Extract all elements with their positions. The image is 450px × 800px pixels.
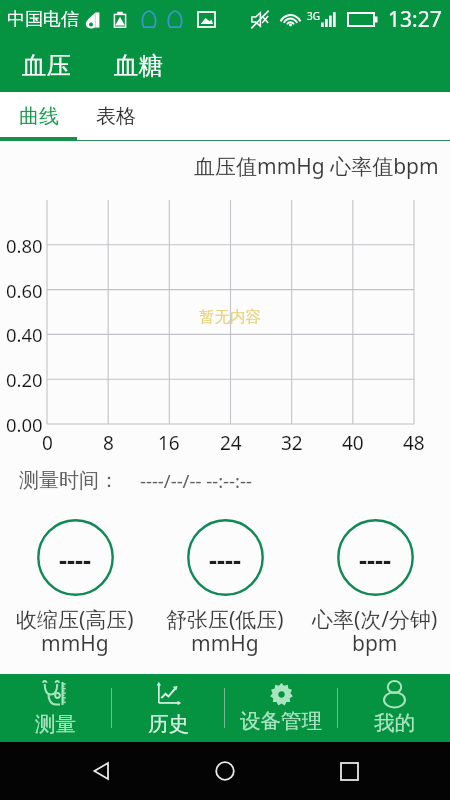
staticText: ----	[359, 542, 392, 576]
button[interactable]: Back	[80, 749, 124, 793]
staticText: 我的	[374, 710, 415, 736]
button[interactable]: Home	[203, 749, 247, 793]
staticText: 0	[42, 430, 53, 456]
button[interactable]: 我的	[338, 674, 450, 742]
staticText: 测量	[35, 711, 76, 737]
staticText: 心率(次/分钟)	[312, 605, 438, 634]
staticText: mmHg	[41, 629, 109, 658]
button[interactable]: ----	[337, 519, 414, 596]
staticText: 3G	[307, 9, 320, 23]
button[interactable]: 表格	[77, 92, 154, 141]
staticText: ----	[209, 542, 242, 576]
staticText: 16	[158, 430, 180, 456]
staticText: 0.00	[6, 412, 43, 437]
staticText: 32	[281, 430, 303, 456]
staticText: mmHg	[191, 629, 259, 658]
staticText: 0.60	[6, 278, 43, 303]
staticText: ----	[59, 542, 92, 576]
staticText: 设备管理	[240, 708, 322, 734]
button[interactable]: 血压	[0, 38, 93, 92]
staticText: 0.80	[6, 233, 43, 258]
staticText: 血糖	[114, 50, 163, 81]
staticText: bpm	[352, 629, 398, 658]
button[interactable]: ----	[37, 519, 114, 596]
staticText: 8	[103, 430, 114, 456]
staticText: 曲线	[19, 104, 59, 129]
staticText: 表格	[96, 104, 136, 129]
staticText: 24	[220, 430, 242, 456]
staticText: 0.20	[6, 367, 43, 392]
button[interactable]: Recent apps	[327, 749, 371, 793]
staticText: 舒张压(低压)	[166, 605, 284, 634]
staticText: 收缩压(高压)	[16, 605, 134, 634]
staticText: ----/--/-- --:--:--	[140, 468, 252, 493]
staticText: 48	[403, 430, 425, 456]
button[interactable]: 历史	[112, 674, 224, 742]
staticText: 暂无内容	[199, 307, 261, 327]
button[interactable]: 血糖	[93, 38, 184, 92]
staticText: 40	[342, 430, 364, 456]
staticText: 测量时间：	[19, 468, 119, 493]
staticText: 血压	[22, 50, 71, 81]
button[interactable]: 设备管理	[225, 674, 337, 742]
staticText: 历史	[148, 711, 189, 737]
button[interactable]: 曲线	[0, 92, 77, 141]
staticText: 13:27	[388, 5, 442, 34]
button[interactable]: ----	[187, 519, 264, 596]
staticText: 血压值mmHg 心率值bpm	[194, 152, 439, 181]
staticText: 中国电信	[7, 8, 79, 31]
staticText: 0.40	[6, 322, 43, 347]
button[interactable]: 测量	[0, 674, 111, 742]
